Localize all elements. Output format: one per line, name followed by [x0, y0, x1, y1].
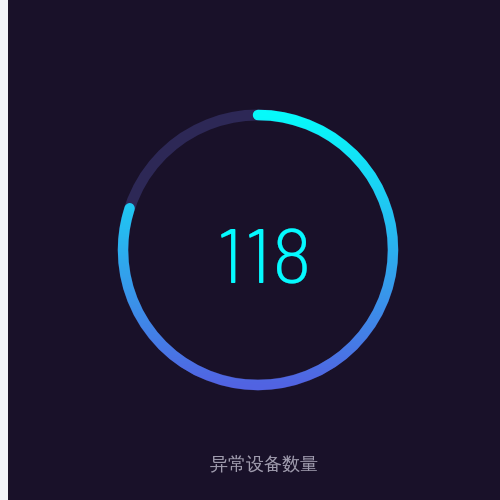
staticText: 118 [216, 206, 313, 298]
button[interactable]: 异常设备数量 [164, 453, 364, 476]
staticText: 异常设备数量 [210, 453, 318, 476]
button[interactable]: 异常设备数量 118 [118, 110, 399, 391]
